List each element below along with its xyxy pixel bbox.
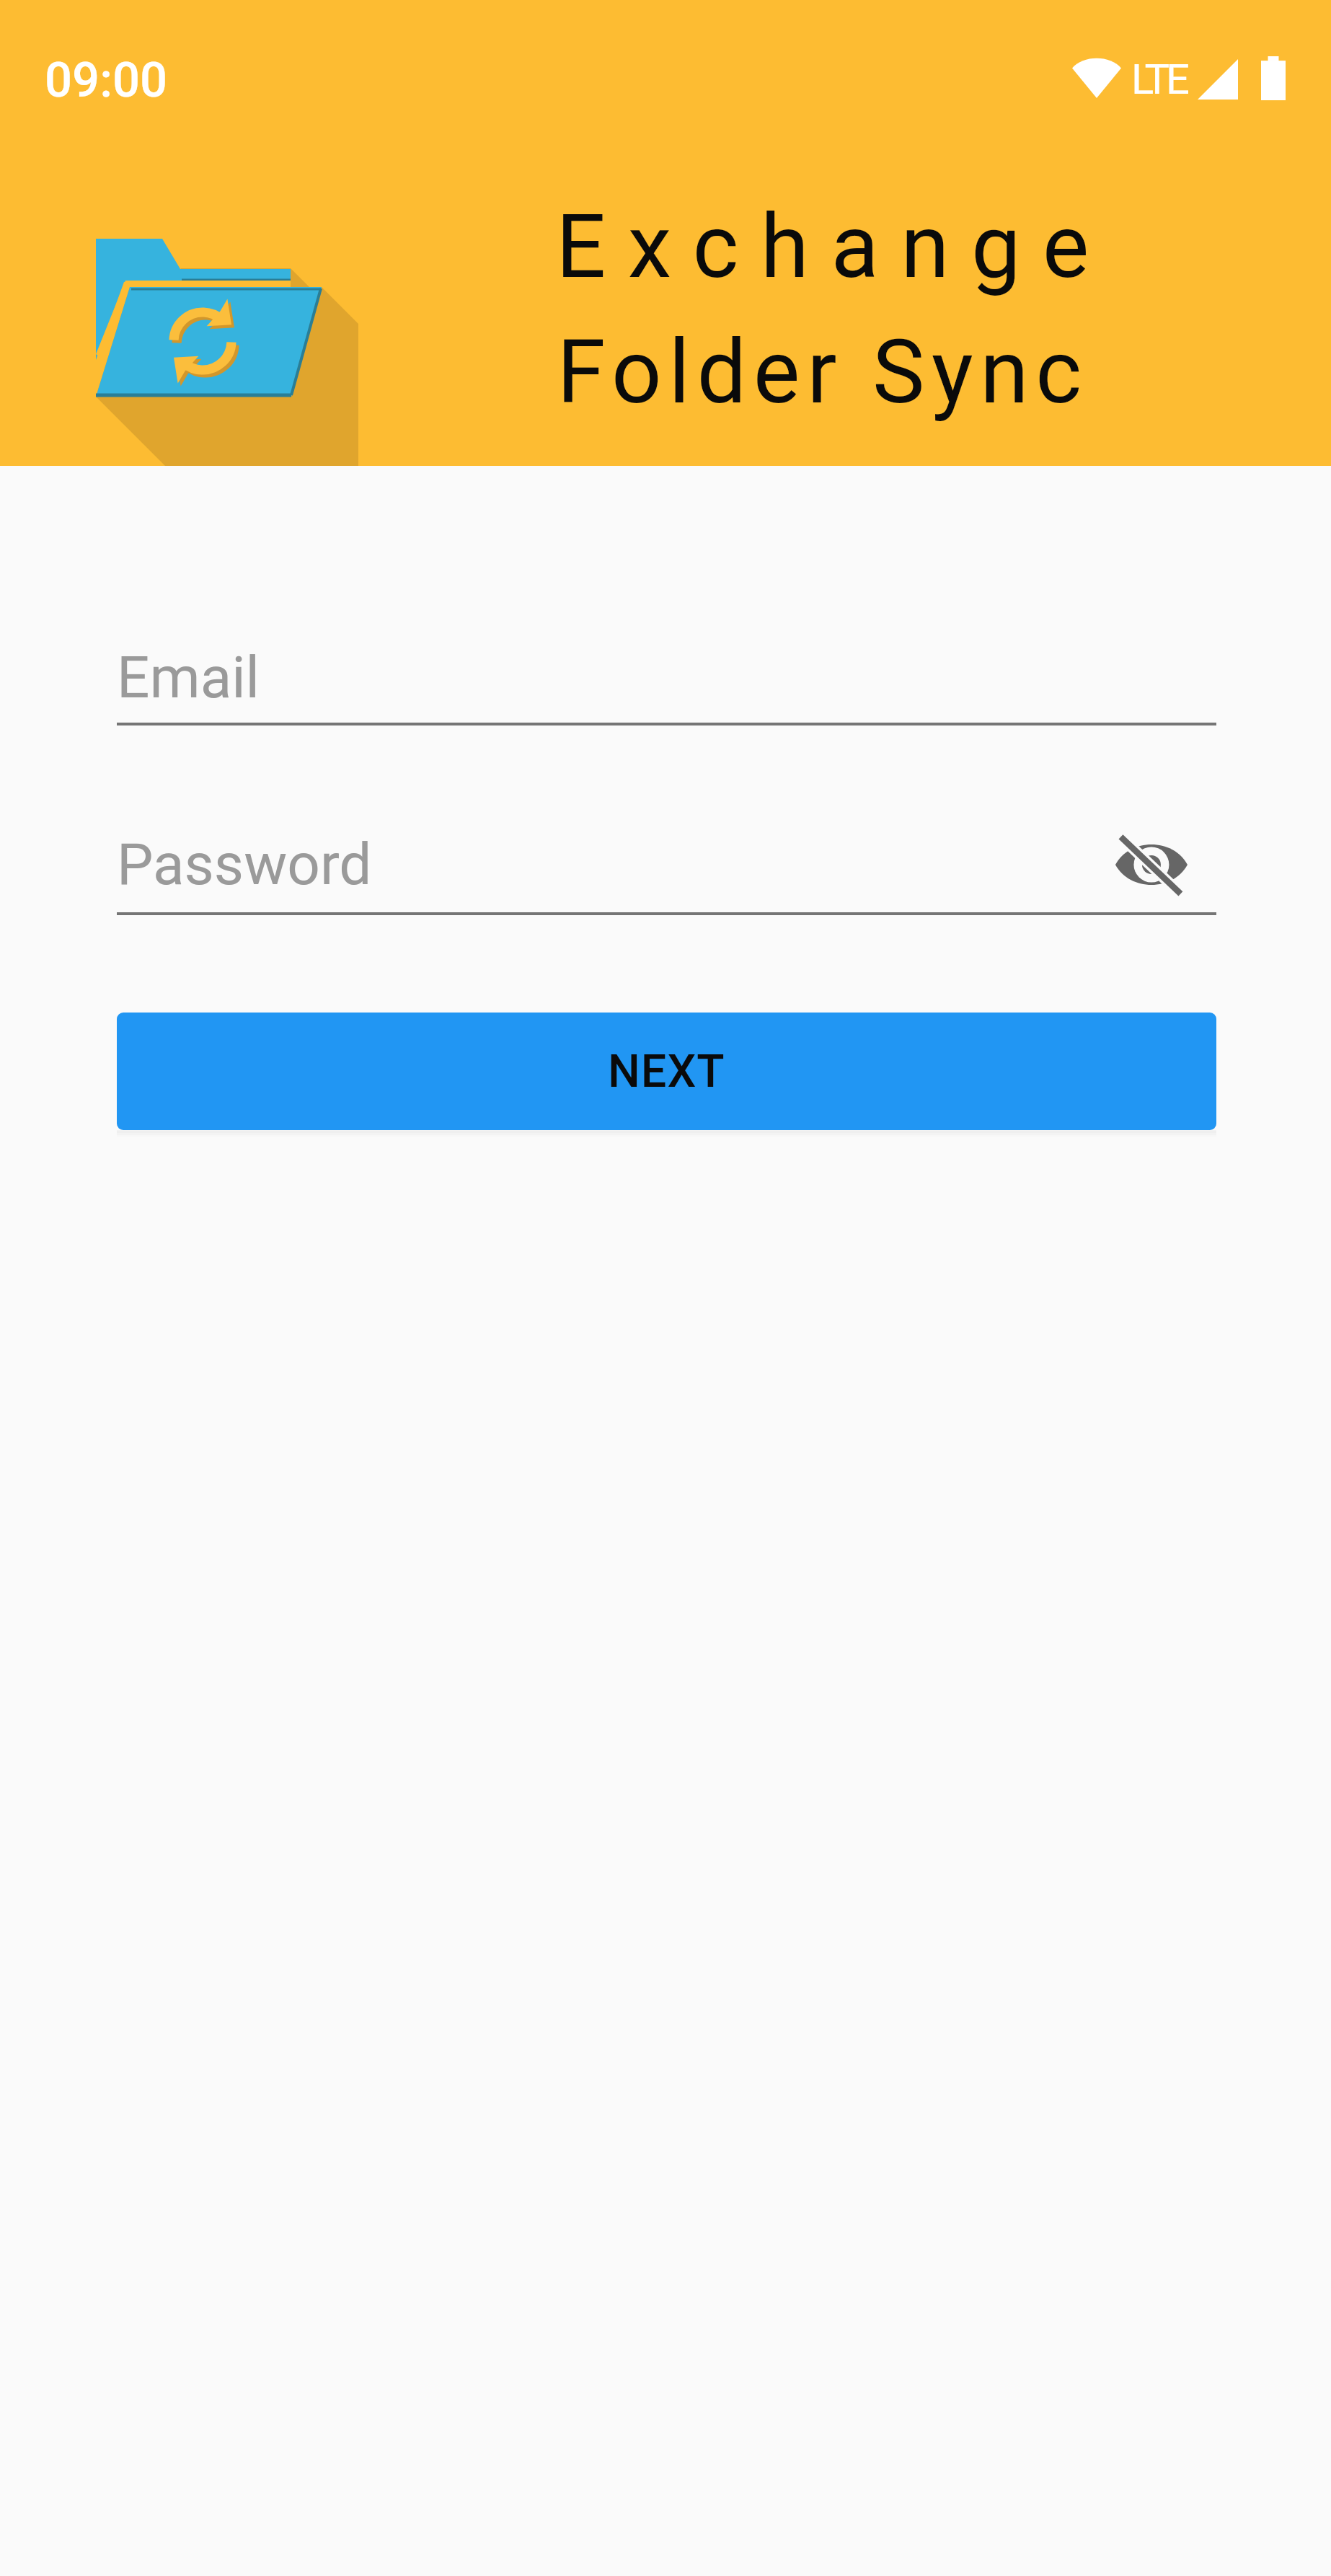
staticText: LTE (1131, 55, 1187, 104)
staticText: Password (117, 831, 372, 899)
button[interactable]: Show password (1108, 821, 1195, 908)
staticText: Folder Sync (462, 321, 1183, 424)
button[interactable]: Email (117, 607, 1216, 725)
staticText: NEXT (608, 1045, 725, 1098)
staticText: Exchange (473, 195, 1194, 299)
button[interactable]: Password (117, 798, 1216, 915)
staticText: Email (117, 644, 260, 712)
button[interactable]: NEXT (117, 1013, 1216, 1130)
staticText: 09:00 (45, 52, 168, 109)
